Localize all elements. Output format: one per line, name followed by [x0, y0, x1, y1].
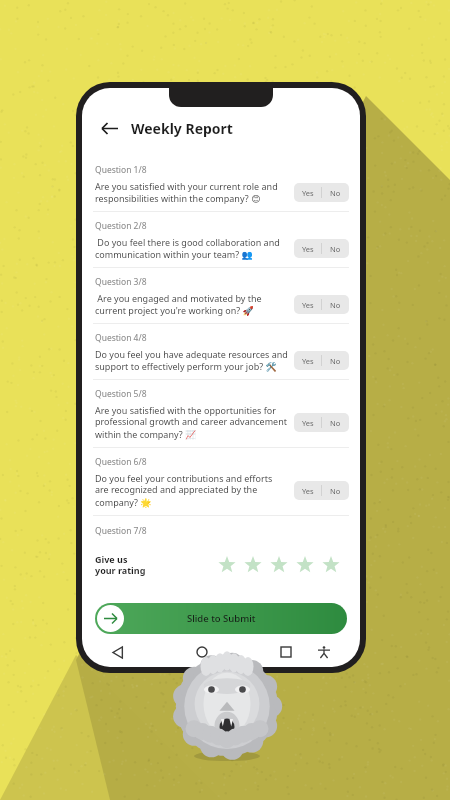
button[interactable]: No	[322, 481, 349, 500]
staticText: Weekly Report	[131, 119, 233, 138]
button[interactable]: No	[322, 239, 349, 258]
button[interactable]: Yes	[294, 351, 321, 370]
staticText: Question 5/8	[95, 388, 147, 400]
staticText: No	[330, 300, 341, 310]
staticText: Question 3/8	[95, 276, 147, 288]
staticText: Are you satisfied with your current role…	[95, 180, 288, 204]
button[interactable]: Rate 4 stars	[294, 554, 316, 576]
staticText: No	[330, 356, 341, 366]
staticText: Question 2/8	[95, 220, 147, 232]
button[interactable]: Yes	[294, 295, 321, 314]
button[interactable]: Yes	[294, 413, 321, 432]
staticText: Yes	[302, 244, 314, 254]
staticText: Slide to Submit	[187, 612, 256, 625]
staticText: No	[330, 244, 341, 254]
staticText: No	[330, 418, 341, 428]
button[interactable]: Rate 3 stars	[268, 554, 290, 576]
staticText: Question 6/8	[95, 456, 147, 468]
button[interactable]: No	[322, 183, 349, 202]
staticText: Do you feel you have adequate resources …	[95, 348, 288, 372]
staticText: Question 7/8	[95, 525, 147, 537]
button[interactable]: Yes	[294, 183, 321, 202]
button[interactable]: Yes	[294, 239, 321, 258]
button[interactable]: Rate 5 stars	[320, 554, 342, 576]
staticText: Are you engaged and motivated by the cur…	[95, 292, 288, 316]
button[interactable]: No	[322, 351, 349, 370]
staticText: Yes	[302, 300, 314, 310]
staticText: Do you feel there is good collaboration …	[95, 236, 288, 260]
button[interactable]: Rate 1 stars	[216, 554, 238, 576]
button[interactable]: Home	[192, 642, 212, 662]
button[interactable]: Back	[96, 115, 122, 141]
staticText: Do you feel your contributions and effor…	[95, 472, 288, 508]
staticText: Question 1/8	[95, 164, 147, 176]
button[interactable]: Back	[108, 642, 128, 662]
button[interactable]: No	[322, 413, 349, 432]
staticText: Are you satisfied with the opportunities…	[95, 404, 288, 440]
staticText: No	[330, 486, 341, 496]
button[interactable]: Accessibility	[314, 642, 334, 662]
button[interactable]: Yes	[294, 481, 321, 500]
button[interactable]: Recent apps	[276, 642, 296, 662]
button[interactable]: Rate 2 stars	[242, 554, 264, 576]
staticText: Yes	[302, 418, 314, 428]
staticText: No	[330, 188, 341, 198]
button[interactable]: No	[322, 295, 349, 314]
staticText: Question 4/8	[95, 332, 147, 344]
staticText: Yes	[302, 356, 314, 366]
staticText: Yes	[302, 486, 314, 496]
staticText: Give us your rating	[95, 553, 146, 577]
button[interactable]: Slide to Submit	[95, 603, 347, 634]
staticText: Yes	[302, 188, 314, 198]
